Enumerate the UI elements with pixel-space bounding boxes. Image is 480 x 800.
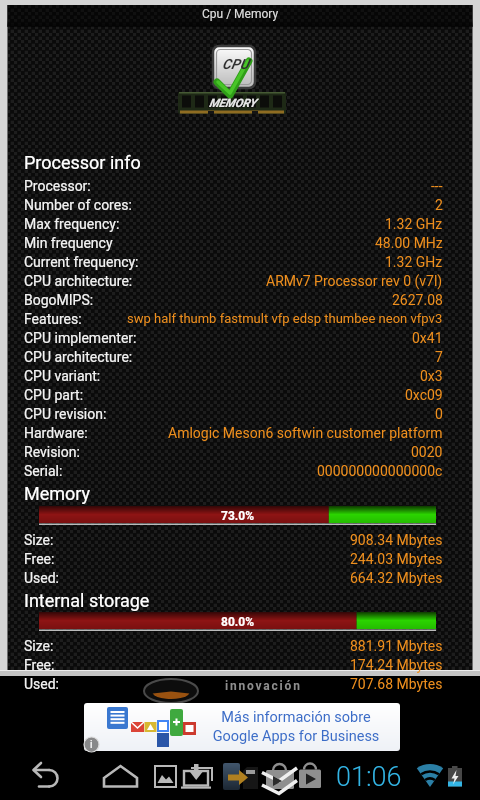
staticText: MEMORY bbox=[209, 96, 257, 109]
staticText: 174.24 Mbytes bbox=[350, 657, 443, 673]
button[interactable]: BogoMIPS: bbox=[24, 291, 443, 310]
staticText: ARMv7 Processor rev 0 (v7l) bbox=[266, 273, 443, 289]
staticText: Google Apps for Business bbox=[196, 728, 396, 745]
staticText: Min frequency bbox=[24, 235, 113, 251]
staticText: Revision: bbox=[24, 444, 80, 460]
button[interactable]: CPU implementer: bbox=[24, 329, 443, 348]
staticText: 0x41 bbox=[412, 330, 443, 346]
button[interactable]: Processor: bbox=[24, 177, 443, 196]
staticText: CPU variant: bbox=[24, 368, 101, 384]
staticText: 244.03 Mbytes bbox=[350, 551, 443, 567]
staticText: Used: bbox=[24, 570, 60, 586]
button[interactable]: CPU variant: bbox=[24, 367, 443, 386]
staticText: Size: bbox=[24, 532, 54, 548]
button[interactable]: Size: bbox=[24, 637, 443, 656]
staticText: Features: bbox=[24, 311, 82, 327]
staticText: Size: bbox=[24, 638, 54, 654]
staticText: Free: bbox=[24, 551, 55, 567]
staticText: 7 bbox=[435, 349, 443, 365]
button[interactable]: Number of cores: bbox=[24, 196, 443, 215]
button[interactable] bbox=[98, 758, 146, 798]
staticText: Más información sobre bbox=[196, 709, 396, 726]
staticText: innovación bbox=[225, 679, 302, 693]
staticText: Used: bbox=[24, 676, 60, 692]
staticText: 1.32 GHz bbox=[385, 254, 443, 270]
staticText: BogoMIPS: bbox=[24, 292, 94, 308]
staticText: swp half thumb fastmult vfp edsp thumbee… bbox=[127, 311, 443, 326]
button[interactable]: Serial: bbox=[24, 462, 443, 481]
staticText: CPU architecture: bbox=[24, 273, 133, 289]
staticText: 2627.08 bbox=[392, 292, 443, 308]
button[interactable]: 01:06 bbox=[336, 761, 402, 793]
staticText: 0x3 bbox=[420, 368, 443, 384]
staticText: Hardware: bbox=[24, 425, 88, 441]
button[interactable]: Hardware: bbox=[24, 424, 443, 443]
button[interactable]: Max frequency: bbox=[24, 215, 443, 234]
staticText: 1.32 GHz bbox=[385, 216, 443, 232]
staticText: Free: bbox=[24, 657, 55, 673]
button[interactable]: Más información sobre bbox=[84, 703, 400, 751]
staticText: 73.0% bbox=[221, 509, 255, 523]
staticText: --- bbox=[431, 178, 443, 194]
staticText: Processor: bbox=[24, 178, 91, 194]
staticText: Max frequency: bbox=[24, 216, 120, 232]
button[interactable]: Used: bbox=[24, 569, 443, 588]
button[interactable] bbox=[180, 758, 216, 798]
staticText: 707.68 Mbytes bbox=[350, 676, 443, 692]
staticText: Number of cores: bbox=[24, 197, 132, 213]
staticText: 2 bbox=[435, 197, 443, 213]
button[interactable]: CPU part: bbox=[24, 386, 443, 405]
staticText: 0020 bbox=[411, 444, 443, 460]
staticText: i bbox=[90, 739, 93, 751]
staticText: CPU revision: bbox=[24, 406, 107, 422]
staticText: CPU architecture: bbox=[24, 349, 133, 365]
button[interactable]: CPU architecture: bbox=[24, 348, 443, 367]
staticText: 0 bbox=[435, 406, 443, 422]
button[interactable]: Revision: bbox=[24, 443, 443, 462]
staticText: 0xc09 bbox=[405, 387, 443, 403]
button[interactable] bbox=[18, 758, 66, 798]
staticText: Serial: bbox=[24, 463, 63, 479]
staticText: 881.91 Mbytes bbox=[350, 638, 443, 654]
staticText: 000000000000000c bbox=[317, 463, 443, 479]
staticText: CPU implementer: bbox=[24, 330, 137, 346]
staticText: Amlogic Meson6 softwin customer platform bbox=[168, 425, 443, 441]
button[interactable]: Min frequency bbox=[24, 234, 443, 253]
staticText: CPU part: bbox=[24, 387, 84, 403]
button[interactable]: Free: bbox=[24, 550, 443, 569]
staticText: CPU bbox=[222, 56, 249, 72]
button[interactable]: Size: bbox=[24, 531, 443, 550]
button[interactable]: Free: bbox=[24, 656, 443, 675]
button[interactable]: Used: bbox=[24, 675, 443, 694]
staticText: 664.32 Mbytes bbox=[350, 570, 443, 586]
staticText: 908.34 Mbytes bbox=[350, 532, 443, 548]
button[interactable]: Features: bbox=[24, 310, 443, 329]
staticText: Current frequency: bbox=[24, 254, 139, 270]
button[interactable] bbox=[148, 758, 180, 798]
staticText: 48.00 MHz bbox=[375, 235, 443, 251]
button[interactable]: Cpu / Memory bbox=[0, 0, 480, 26]
button[interactable]: Current frequency: bbox=[24, 253, 443, 272]
staticText: Processor info bbox=[24, 152, 141, 173]
staticText: Memory bbox=[24, 483, 91, 504]
staticText: 80.0% bbox=[221, 615, 255, 629]
staticText: Cpu / Memory bbox=[202, 7, 279, 21]
button[interactable]: CPU architecture: bbox=[24, 272, 443, 291]
staticText: Internal storage bbox=[24, 590, 150, 611]
button[interactable]: CPU revision: bbox=[24, 405, 443, 424]
